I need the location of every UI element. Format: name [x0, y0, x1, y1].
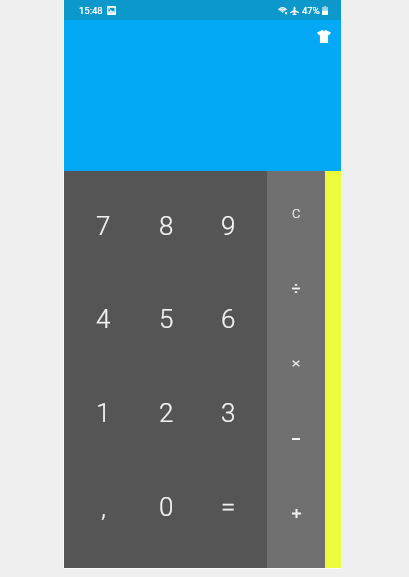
staticText: 0: [159, 492, 174, 522]
staticText: 3: [221, 398, 236, 428]
button[interactable]: Clear: [267, 175, 325, 251]
staticText: 6: [221, 304, 236, 334]
button[interactable]: =: [197, 460, 259, 554]
button[interactable]: Multiply: [267, 326, 325, 401]
button[interactable]: Divide: [267, 251, 325, 326]
button[interactable]: 6: [197, 272, 259, 366]
staticText: 4: [96, 304, 111, 334]
button[interactable]: Add: [267, 476, 325, 551]
button[interactable]: Subtract: [267, 401, 325, 476]
button[interactable]: 5: [135, 272, 197, 366]
staticText: 15:48: [79, 5, 103, 16]
staticText: =: [221, 492, 236, 522]
staticText: 7: [96, 211, 111, 241]
button[interactable]: Change theme: [307, 19, 341, 53]
button[interactable]: 3: [197, 366, 259, 460]
staticText: 2: [159, 398, 174, 428]
staticText: C: [292, 206, 301, 221]
button[interactable]: 4: [72, 272, 135, 366]
button[interactable]: 1: [72, 366, 135, 460]
button[interactable]: 2: [135, 366, 197, 460]
staticText: 47%: [302, 5, 320, 16]
button[interactable]: 0: [135, 460, 197, 554]
button[interactable]: ,: [72, 460, 135, 554]
staticText: 5: [159, 304, 174, 334]
button[interactable]: 9: [197, 179, 259, 272]
staticText: 9: [221, 211, 236, 241]
button[interactable]: 7: [72, 179, 135, 272]
staticText: 1: [96, 398, 111, 428]
staticText: ,: [101, 492, 106, 522]
button[interactable]: 8: [135, 179, 197, 272]
staticText: 8: [159, 211, 174, 241]
